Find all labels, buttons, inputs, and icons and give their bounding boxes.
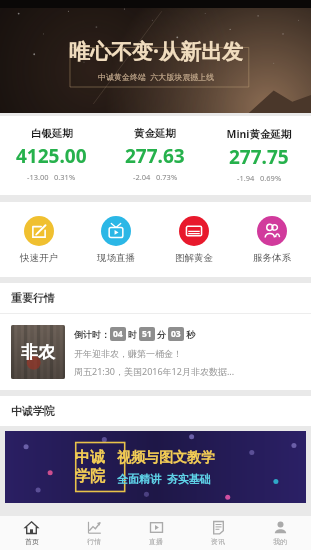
staticText: 4125.00: [16, 143, 87, 169]
button[interactable]: 唯心不变·从新出发: [0, 0, 311, 113]
staticText: 全面精讲 夯实基础: [117, 471, 211, 486]
staticText: 快速开户: [20, 252, 58, 264]
staticText: 秒: [186, 329, 195, 340]
staticText: 0.73%: [156, 172, 178, 182]
button[interactable]: Mini黄金延期: [207, 127, 311, 183]
staticText: -1.94: [237, 173, 255, 183]
staticText: 黄金延期: [134, 127, 176, 140]
staticText: 04: [113, 328, 123, 340]
staticText: 分: [157, 329, 166, 340]
staticText: 白银延期: [31, 127, 73, 140]
button[interactable]: 我的: [249, 516, 311, 550]
button[interactable]: 快速开户: [0, 216, 77, 264]
staticText: 中诚学院: [11, 404, 55, 418]
staticText: 我的: [273, 537, 287, 546]
staticText: 视频与图文教学: [117, 449, 215, 467]
button[interactable]: 资讯: [187, 516, 249, 550]
button[interactable]: 现场直播: [77, 216, 155, 264]
staticText: 中诚: [75, 448, 105, 467]
button[interactable]: 服务体系: [233, 216, 311, 264]
staticText: 0.69%: [260, 173, 282, 183]
staticText: 行情: [87, 537, 101, 546]
staticText: -13.00: [27, 172, 49, 182]
staticText: 服务体系: [253, 252, 291, 264]
staticText: 03: [171, 328, 181, 340]
staticText: 277.63: [125, 143, 185, 169]
staticText: 0.31%: [54, 172, 76, 182]
staticText: 周五21:30，美国2016年12月非农数据...: [74, 365, 235, 377]
staticText: 开年迎非农，赚第一桶金！: [74, 348, 182, 359]
staticText: Mini黄金延期: [226, 127, 292, 141]
button[interactable]: 非农: [0, 314, 311, 390]
staticText: 非农: [21, 342, 55, 363]
button[interactable]: 黄金延期: [103, 127, 207, 182]
staticText: 倒计时：: [74, 329, 110, 340]
button[interactable]: 直播: [125, 516, 187, 550]
staticText: 中诚黄金终端 六大版块震撼上线: [98, 71, 215, 82]
button[interactable]: 图解黄金: [155, 216, 233, 264]
staticText: 资讯: [211, 537, 225, 546]
staticText: 重要行情: [11, 291, 55, 305]
button[interactable]: 行情: [63, 516, 125, 550]
staticText: 学院: [75, 467, 105, 486]
button[interactable]: 首页: [0, 516, 63, 550]
button[interactable]: 中诚: [5, 431, 306, 503]
staticText: 直播: [149, 537, 163, 546]
staticText: 277.75: [229, 144, 289, 170]
staticText: 时: [128, 329, 137, 340]
staticText: 现场直播: [97, 252, 135, 264]
staticText: 首页: [25, 537, 39, 546]
staticText: 图解黄金: [175, 252, 213, 264]
button[interactable]: 白银延期: [0, 127, 103, 182]
staticText: 唯心不变·从新出发: [69, 37, 243, 66]
staticText: 51: [142, 328, 152, 340]
staticText: -2.04: [133, 172, 151, 182]
